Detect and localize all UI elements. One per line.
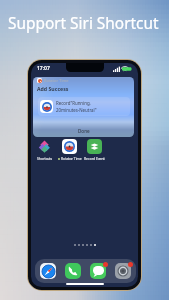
staticText: Support Siri Shortcut [8, 13, 159, 34]
button[interactable]: Done [33, 125, 134, 137]
button[interactable]: Safari [40, 263, 56, 279]
staticText: 17:07 [37, 65, 50, 72]
button[interactable]: Rotator Time [57, 139, 82, 161]
button[interactable]: Messages [90, 263, 106, 279]
staticText: Rotator Time [44, 78, 69, 83]
button[interactable]: Record"Running, [38, 97, 130, 116]
button[interactable]: Phone [65, 263, 81, 279]
button[interactable]: Record Event [82, 139, 107, 161]
staticText: 20minutes-Neutral" [56, 107, 97, 113]
staticText: Shortcuts [37, 156, 53, 161]
button[interactable]: Settings [115, 263, 131, 279]
button[interactable]: Shortcuts [32, 139, 57, 161]
staticText: Add Success [37, 85, 69, 92]
staticText: Done [78, 128, 90, 134]
staticText: Record"Running, [56, 100, 91, 106]
staticText: Record Event [84, 156, 105, 161]
staticText: Rotator Time [61, 156, 82, 161]
